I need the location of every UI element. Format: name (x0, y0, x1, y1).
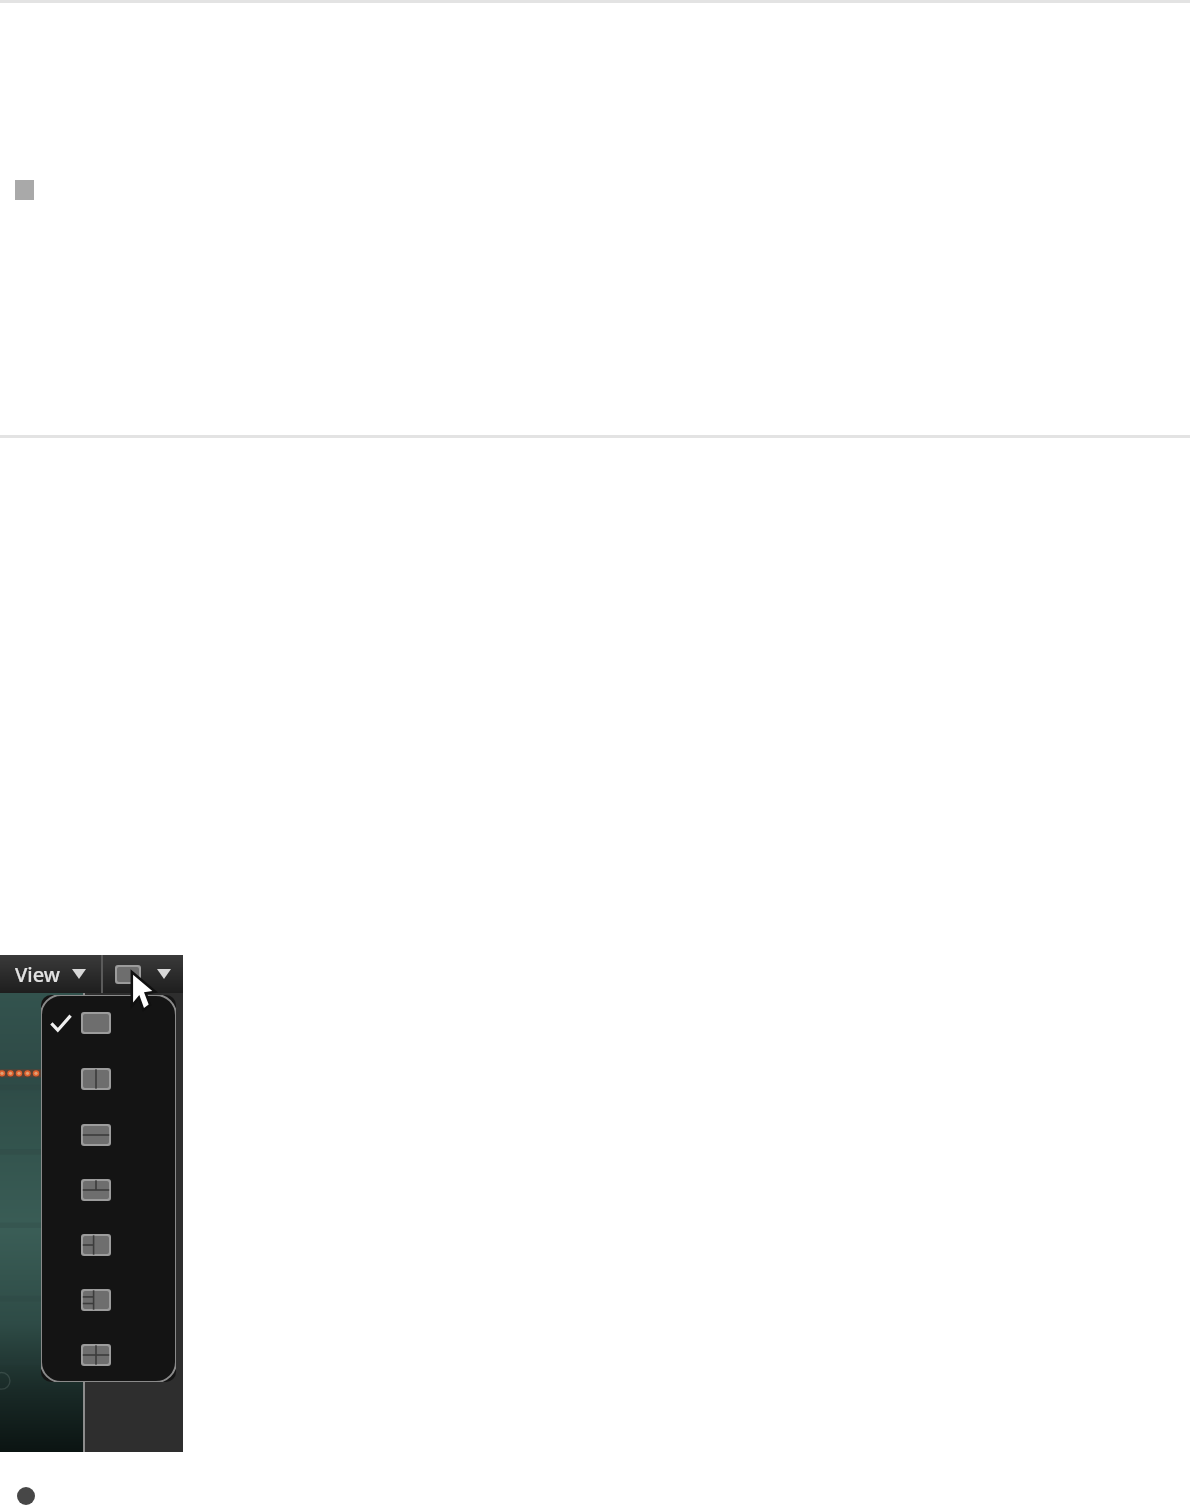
button[interactable] (41, 1162, 176, 1217)
button[interactable]: View (0, 955, 101, 993)
button[interactable] (41, 1107, 176, 1162)
button[interactable] (41, 995, 176, 1051)
staticText: View (15, 961, 60, 988)
button[interactable] (41, 1272, 176, 1327)
button[interactable] (41, 1217, 176, 1272)
button[interactable]: Layout options (103, 955, 183, 993)
button[interactable] (41, 1327, 176, 1382)
button[interactable] (41, 1051, 176, 1107)
